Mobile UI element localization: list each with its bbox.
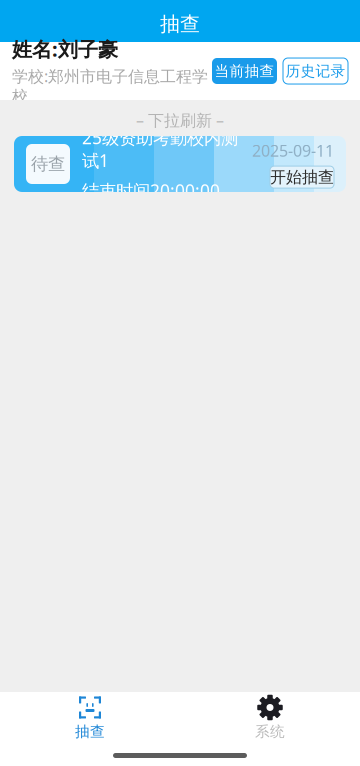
staticText: 待查 <box>31 153 65 175</box>
staticText: 学校:郑州市电子信息工程学校 <box>12 65 208 106</box>
button[interactable]: 待查 <box>14 136 346 192</box>
staticText: 2025-09-11 <box>252 140 334 161</box>
staticText: – 下拉刷新 – <box>136 109 224 131</box>
button[interactable]: 历史记录 <box>283 58 348 84</box>
staticText: 25级资助考勤校内测试1 <box>82 126 238 172</box>
staticText: 抽查 <box>160 12 200 36</box>
button[interactable]: 当前抽查 <box>212 58 277 84</box>
staticText: 抽查 <box>75 722 105 740</box>
staticText: 历史记录 <box>285 62 345 80</box>
staticText: 开始抽查 <box>270 167 334 187</box>
staticText: 结束时间20:00:00 <box>82 179 220 202</box>
staticText: 姓名:刘子豪 <box>12 36 118 62</box>
staticText: 系统 <box>255 722 285 740</box>
button[interactable]: 系统 <box>180 694 360 742</box>
button[interactable]: 抽查 <box>0 694 180 742</box>
staticText: 当前抽查 <box>214 62 274 80</box>
